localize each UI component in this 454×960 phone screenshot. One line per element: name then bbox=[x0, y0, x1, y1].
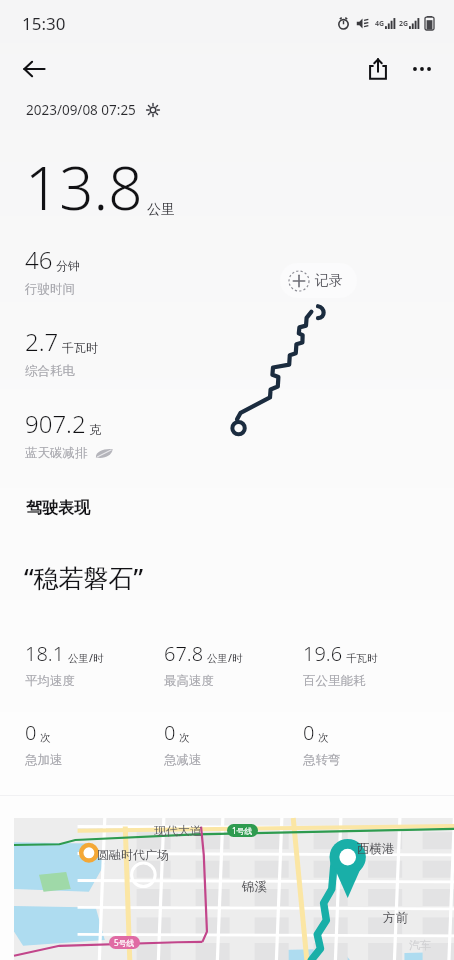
staticText: 5号线 bbox=[114, 937, 135, 948]
staticText: 千瓦时 bbox=[346, 652, 378, 665]
button[interactable]: 记录 bbox=[280, 263, 357, 298]
staticText: 13.8 bbox=[25, 146, 143, 228]
staticText: 分钟 bbox=[56, 258, 80, 273]
staticText: 千瓦时 bbox=[62, 340, 98, 355]
staticText: 2G bbox=[399, 19, 409, 29]
staticText: 67.8 bbox=[164, 640, 204, 667]
staticText: 2023/09/08 07:25 bbox=[26, 101, 136, 119]
staticText: 15:30 bbox=[22, 12, 66, 35]
staticText: 急加速 bbox=[25, 752, 63, 768]
button[interactable]: More options bbox=[400, 47, 444, 91]
staticText: 记录 bbox=[315, 272, 343, 290]
staticText: 4G bbox=[375, 19, 385, 29]
staticText: 综合耗电 bbox=[25, 363, 75, 379]
staticText: “稳若磐石” bbox=[24, 560, 144, 594]
staticText: 方前 bbox=[383, 910, 408, 926]
staticText: 急减速 bbox=[164, 752, 202, 768]
staticText: 907.2 bbox=[25, 407, 86, 440]
staticText: 现代大道 bbox=[154, 823, 202, 838]
button[interactable]: Back bbox=[12, 47, 56, 91]
staticText: 西横港 bbox=[357, 841, 395, 857]
staticText: 最高速度 bbox=[164, 673, 214, 689]
staticText: 百公里能耗 bbox=[303, 673, 366, 689]
staticText: 克 bbox=[89, 422, 101, 437]
staticText: 46 bbox=[25, 243, 53, 276]
staticText: 2.7 bbox=[25, 325, 59, 358]
staticText: 19.6 bbox=[303, 640, 343, 667]
staticText: 次 bbox=[40, 731, 51, 744]
staticText: 驾驶表现 bbox=[26, 498, 90, 518]
staticText: 1号线 bbox=[232, 825, 253, 836]
staticText: 18.1 bbox=[25, 640, 65, 667]
staticText: 行驶时间 bbox=[25, 281, 75, 297]
staticText: 次 bbox=[318, 731, 329, 744]
staticText: 0 bbox=[25, 719, 37, 746]
staticText: 0 bbox=[164, 719, 176, 746]
button[interactable]: Share bbox=[356, 47, 400, 91]
staticText: 蓝天碳减排 bbox=[25, 445, 88, 461]
button[interactable]: Route map bbox=[14, 818, 454, 960]
staticText: 0 bbox=[303, 719, 315, 746]
staticText: 锦溪 bbox=[242, 879, 267, 895]
staticText: 公里/时 bbox=[68, 651, 104, 665]
staticText: 次 bbox=[179, 731, 190, 744]
staticText: 急转弯 bbox=[303, 752, 341, 768]
staticText: 平均速度 bbox=[25, 673, 75, 689]
staticText: 公里 bbox=[147, 201, 175, 219]
staticText: 公里/时 bbox=[207, 651, 243, 665]
staticText: 圆融时代广场 bbox=[97, 847, 169, 862]
staticText: 汽车 bbox=[409, 938, 431, 952]
